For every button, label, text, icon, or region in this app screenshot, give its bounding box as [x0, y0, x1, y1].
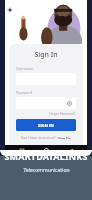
staticText: SIGN IN — [38, 123, 54, 128]
staticText: SMARTDATALINKS — [4, 150, 88, 162]
staticText: Don't have an account? — [21, 136, 56, 139]
staticText: Password — [16, 90, 32, 95]
button[interactable]: SIGN IN — [16, 119, 76, 131]
button[interactable]: Sign Up — [58, 136, 71, 139]
staticText: Telecommunication — [23, 167, 70, 174]
staticText: Username — [16, 66, 34, 71]
button[interactable]: Back — [66, 146, 75, 155]
staticText: Sign In — [16, 50, 76, 60]
button[interactable]: Show password — [16, 97, 76, 109]
button[interactable]: Forgot Password? — [49, 112, 76, 116]
button[interactable]: Recents — [17, 146, 26, 155]
button[interactable]: Home — [42, 146, 51, 155]
button[interactable]: Back — [6, 6, 14, 14]
button[interactable]: Show password — [66, 100, 73, 107]
